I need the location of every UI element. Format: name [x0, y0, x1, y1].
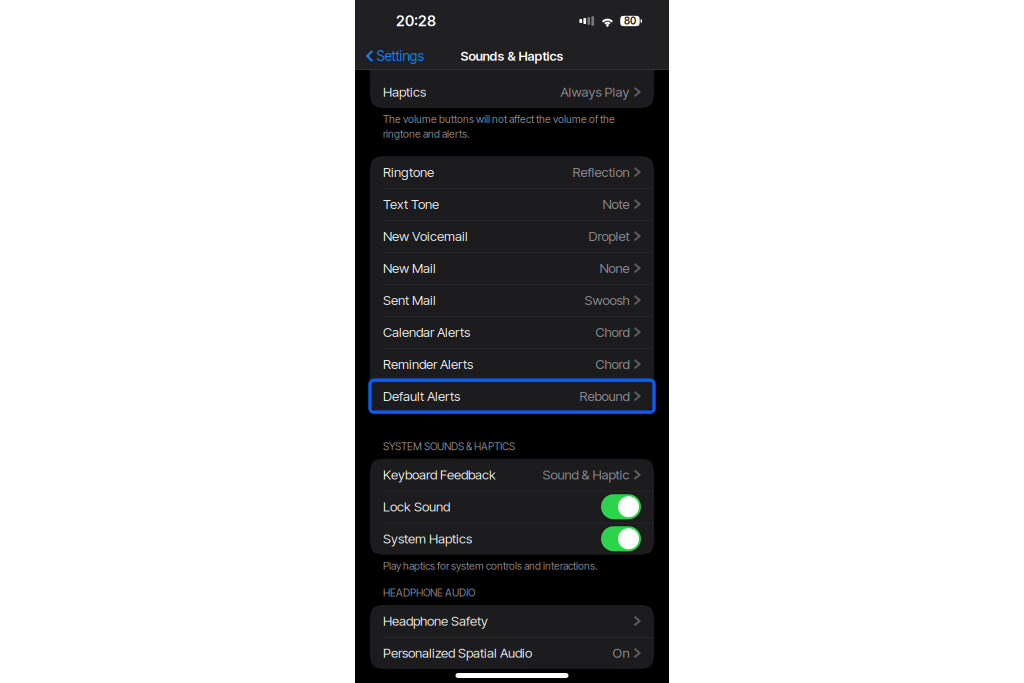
staticText: 20:28 [396, 12, 436, 30]
staticText: Haptics [383, 84, 426, 100]
button[interactable]: System Haptics [370, 523, 654, 555]
staticText: Always Play [560, 84, 629, 100]
staticText: Sounds & Haptics [460, 48, 563, 64]
staticText: SYSTEM SOUNDS & HAPTICS [383, 440, 515, 453]
staticText: Sound & Haptic [542, 467, 629, 483]
staticText: Sent Mail [383, 292, 436, 308]
staticText: None [599, 260, 629, 276]
staticText: Headphone Safety [383, 613, 488, 629]
staticText: ringtone and alerts. [383, 128, 469, 140]
staticText: Play haptics for system controls and int… [383, 560, 597, 572]
staticText: Chord [595, 324, 629, 340]
staticText: 80 [624, 15, 636, 27]
staticText: New Voicemail [383, 228, 468, 244]
staticText: Rebound [579, 388, 629, 404]
staticText: Reminder Alerts [383, 356, 473, 372]
staticText: Default Alerts [383, 388, 460, 404]
button[interactable]: Ringtone [370, 156, 654, 188]
button[interactable]: Sent Mail [370, 284, 654, 316]
button[interactable]: Reminder Alerts [370, 348, 654, 380]
button[interactable]: Calendar Alerts [370, 316, 654, 348]
staticText: Note [602, 196, 629, 212]
button[interactable]: Settings [366, 43, 424, 69]
button[interactable]: New Voicemail [370, 220, 654, 252]
button[interactable]: Default Alerts [370, 380, 654, 412]
staticText: Keyboard Feedback [383, 467, 496, 483]
staticText: The volume buttons will not affect the v… [383, 113, 615, 126]
button[interactable]: Haptics [355, 70, 669, 108]
staticText: System Haptics [383, 531, 472, 547]
button[interactable]: Headphone Safety [370, 605, 654, 637]
button[interactable]: Personalized Spatial Audio [370, 637, 654, 669]
staticText: Calendar Alerts [383, 324, 470, 340]
staticText: Settings [376, 48, 424, 64]
button[interactable]: Text Tone [370, 188, 654, 220]
staticText: Droplet [588, 228, 629, 244]
button[interactable]: New Mail [370, 252, 654, 284]
staticText: Text Tone [383, 196, 439, 212]
staticText: Chord [595, 356, 629, 372]
staticText: Reflection [572, 164, 629, 180]
button[interactable]: Keyboard Feedback [370, 459, 654, 491]
staticText: HEADPHONE AUDIO [383, 586, 475, 599]
staticText: On [612, 645, 629, 661]
staticText: New Mail [383, 260, 436, 276]
staticText: Ringtone [383, 164, 434, 180]
staticText: Lock Sound [383, 499, 450, 515]
staticText: Swoosh [584, 292, 629, 308]
button[interactable]: Lock Sound [370, 491, 654, 523]
staticText: Personalized Spatial Audio [383, 645, 532, 661]
